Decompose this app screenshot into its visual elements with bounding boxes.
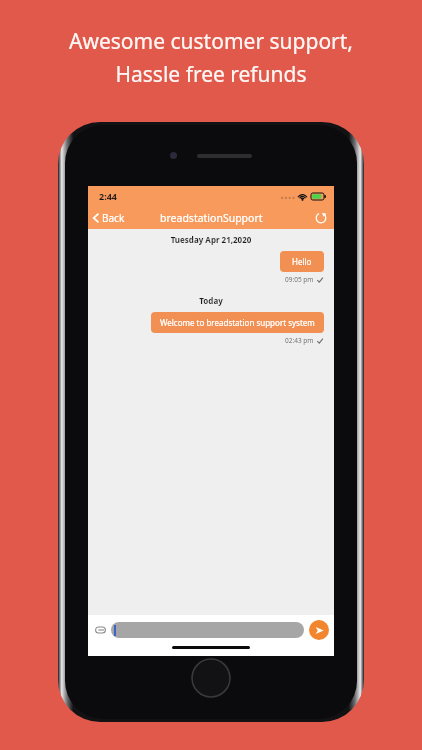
button[interactable]: [111, 622, 304, 638]
staticText: Hassle free refunds: [115, 60, 307, 89]
button[interactable]: Refresh: [308, 208, 334, 228]
staticText: Hello: [292, 256, 312, 267]
staticText: Today: [88, 295, 334, 306]
staticText: Welcome to breadstation support system: [160, 317, 315, 328]
button[interactable]: Hello: [280, 251, 324, 272]
staticText: breadstationSupport: [160, 211, 263, 225]
button[interactable]: Back: [88, 208, 131, 228]
button[interactable]: Welcome to breadstation support system: [151, 312, 324, 333]
staticText: 02:43 pm: [285, 336, 314, 345]
staticText: Tuesday Apr 21,2020: [88, 234, 334, 245]
staticText: 2:44: [99, 190, 117, 202]
staticText: 09:05 pm: [285, 275, 314, 284]
staticText: Awesome customer support,: [69, 27, 353, 56]
button[interactable]: Send: [309, 620, 329, 640]
staticText: Back: [102, 211, 125, 225]
button[interactable]: Attach: [93, 624, 108, 636]
